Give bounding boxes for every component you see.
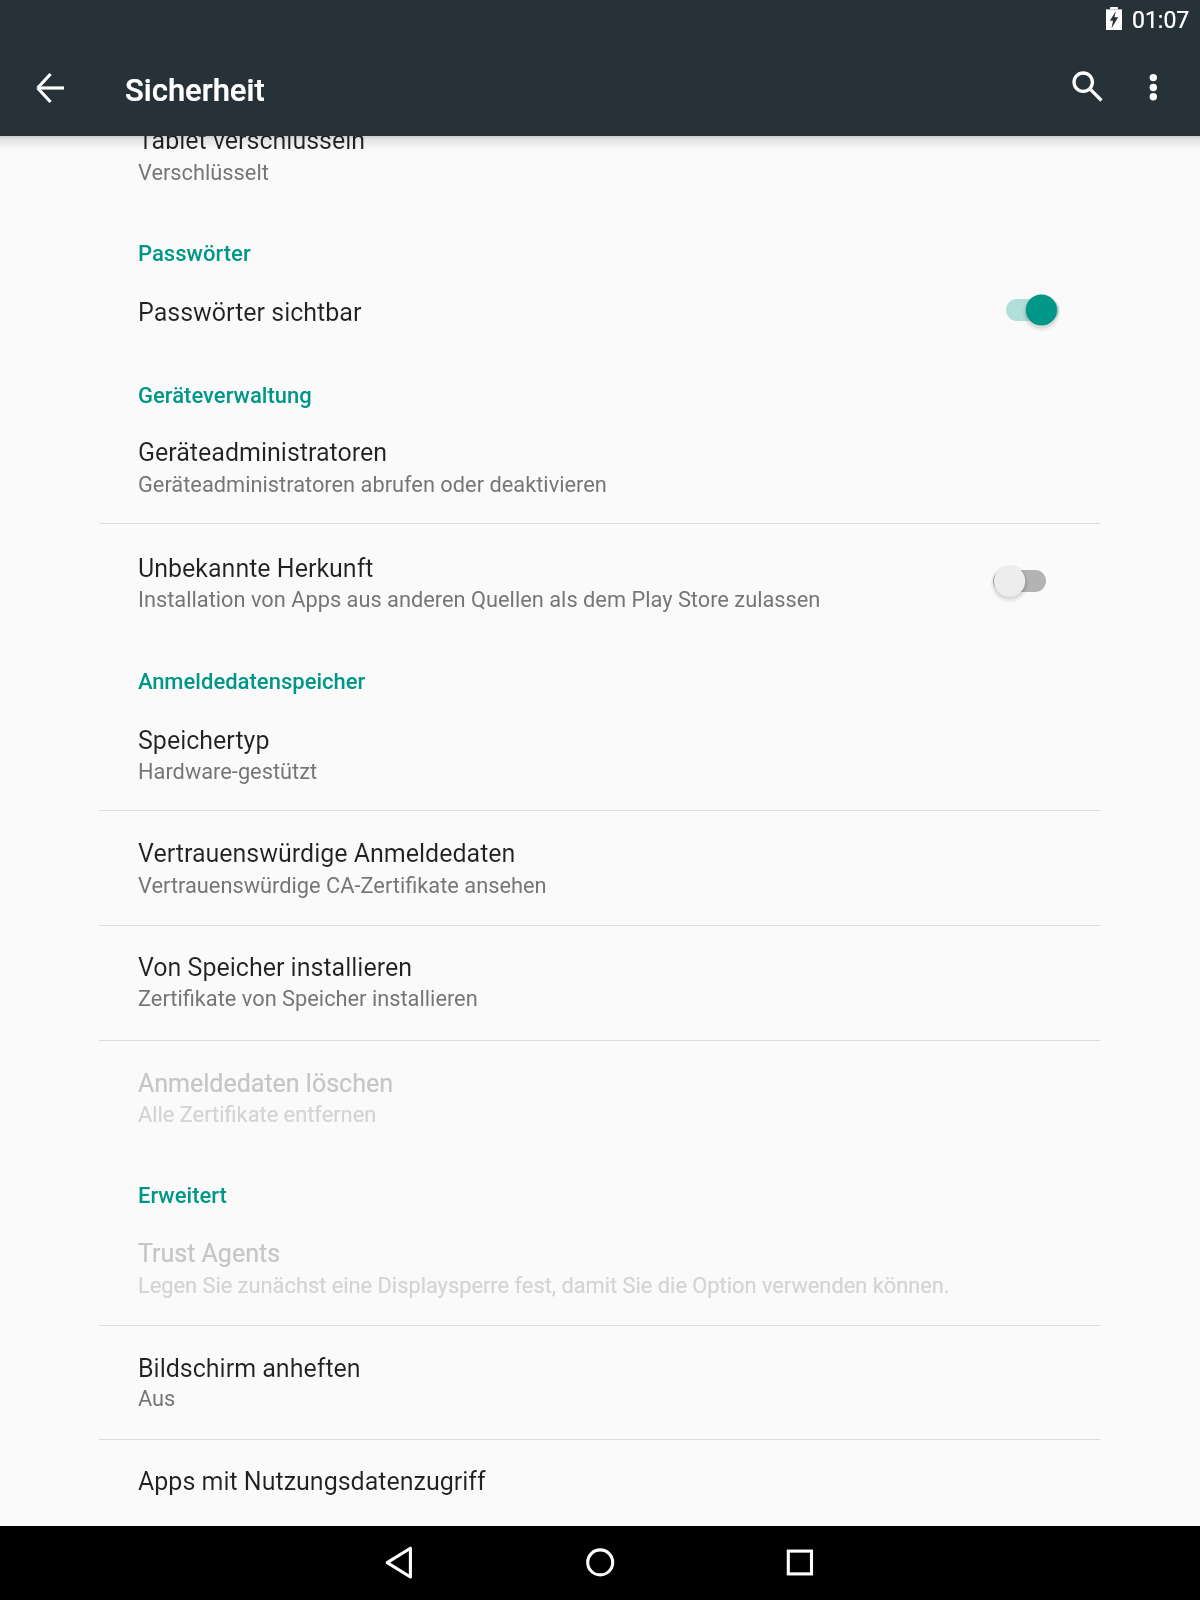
staticText: Vertrauenswürdige Anmeldedaten: [138, 839, 516, 868]
staticText: Zertifikate von Speicher installieren: [138, 986, 478, 1012]
staticText: Passwörter sichtbar: [138, 298, 362, 327]
button[interactable]: [0, 696, 1101, 810]
staticText: 01:07: [1132, 7, 1190, 34]
button[interactable]: More options: [1124, 36, 1184, 136]
staticText: Anmeldedaten löschen: [138, 1069, 394, 1098]
staticText: Geräteverwaltung: [138, 383, 312, 409]
button[interactable]: Home: [548, 1526, 652, 1600]
staticText: Alle Zertifikate entfernen: [138, 1102, 377, 1128]
button[interactable]: Switch on: [986, 276, 1080, 344]
staticText: Trust Agents: [138, 1239, 281, 1268]
button[interactable]: [0, 1040, 1101, 1156]
staticText: Bildschirm anheften: [138, 1354, 361, 1383]
button[interactable]: [0, 810, 1101, 925]
button[interactable]: [0, 925, 1101, 1040]
staticText: Verschlüsselt: [138, 160, 269, 186]
button[interactable]: Recent apps: [748, 1526, 852, 1600]
button[interactable]: [0, 524, 1101, 640]
staticText: Passwörter: [138, 241, 251, 267]
button[interactable]: Back: [348, 1526, 452, 1600]
button[interactable]: Search: [1040, 36, 1124, 136]
staticText: Speichertyp: [138, 726, 270, 755]
staticText: Vertrauenswürdige CA-Zertifikate ansehen: [138, 873, 547, 899]
staticText: Aus: [138, 1386, 176, 1412]
button[interactable]: [0, 1439, 1101, 1526]
button[interactable]: [0, 408, 1101, 523]
staticText: Geräteadministratoren abrufen oder deakt…: [138, 472, 607, 498]
staticText: Legen Sie zunächst eine Displaysperre fe…: [138, 1273, 950, 1299]
button[interactable]: [0, 1209, 1101, 1325]
staticText: Von Speicher installieren: [138, 953, 412, 982]
staticText: Tablet verschlüsseln: [138, 126, 366, 155]
staticText: Apps mit Nutzungsdatenzugriff: [138, 1467, 486, 1496]
button[interactable]: [0, 1325, 1101, 1439]
button[interactable]: [0, 136, 1101, 196]
button[interactable]: [0, 250, 1101, 352]
staticText: Geräteadministratoren: [138, 438, 388, 467]
staticText: Installation von Apps aus anderen Quelle…: [138, 587, 821, 613]
button[interactable]: Switch off: [973, 547, 1067, 615]
button[interactable]: Navigate up: [6, 36, 94, 136]
staticText: Erweitert: [138, 1183, 227, 1209]
staticText: Hardware-gestützt: [138, 759, 318, 785]
staticText: Unbekannte Herkunft: [138, 554, 374, 583]
staticText: Sicherheit: [125, 72, 265, 108]
staticText: Anmeldedatenspeicher: [138, 669, 366, 695]
